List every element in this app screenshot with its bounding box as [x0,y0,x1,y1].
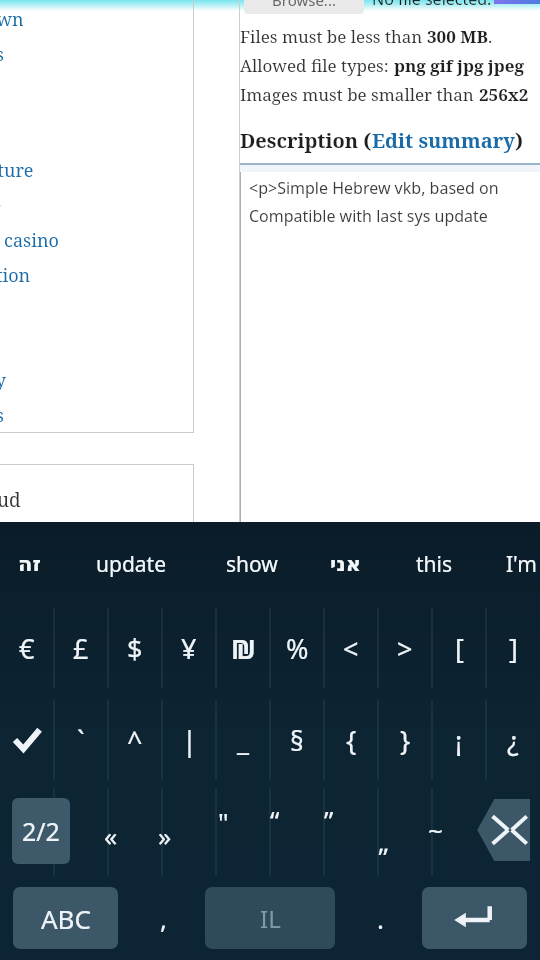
staticText: Allowed file types: [240,54,394,77]
staticText: ~ [428,812,443,847]
staticText: . [377,901,384,936]
staticText: ud [0,487,21,513]
button[interactable]: « [90,814,132,856]
button[interactable]: 2/2 [12,798,70,864]
button[interactable]: זה [18,544,41,584]
button[interactable]: ¿ [486,694,540,786]
button[interactable]: ` [54,694,108,786]
staticText: I'm [506,550,537,579]
button[interactable]: Space [205,887,335,949]
button[interactable]: I'm [506,544,537,584]
staticText: update [96,550,167,579]
staticText: > [397,630,413,667]
staticText: 300 MB [427,25,488,48]
staticText: 256x2 [479,83,529,106]
button[interactable]: " [202,800,244,842]
staticText: IL [260,902,281,935]
button[interactable]: ¡ [432,694,486,786]
button[interactable]: } [378,694,432,786]
staticText: , [160,901,167,936]
button[interactable]: es [0,42,4,67]
button[interactable]: € [0,602,54,694]
staticText: אני [330,552,361,576]
button[interactable]: es [0,403,4,428]
button[interactable]: . [357,887,403,949]
staticText: . [488,25,493,48]
staticText: « [104,818,118,853]
button[interactable]: ₪ [216,602,270,694]
button[interactable]: show [226,544,278,584]
staticText: זה [18,552,41,576]
staticText: € [19,630,35,667]
button[interactable]: ABC [13,887,118,949]
button[interactable]: gy [0,368,6,393]
button[interactable]: this [416,544,453,584]
button[interactable]: § [270,694,324,786]
button[interactable]: Edit summary [372,127,515,154]
staticText: < [343,630,359,667]
staticText: ) [515,127,524,154]
button[interactable]: אני [330,544,361,584]
button[interactable]: _ [216,694,270,786]
button[interactable]: “ [254,798,296,840]
staticText: _ [237,722,249,759]
button[interactable]: ^ [108,694,162,786]
staticText: % [286,630,309,667]
staticText: Description ( [240,127,372,154]
staticText: ` [77,722,85,759]
staticText: 2/2 [22,814,60,848]
button[interactable]: ” [308,798,350,840]
staticText: £ [73,630,89,667]
button[interactable]: <p>Simple Hebrew vkb, based on [240,163,540,535]
staticText: Files must be less than [240,25,427,48]
button[interactable]: own [0,7,24,32]
button[interactable]: ~ [414,808,456,850]
staticText: | [182,722,197,759]
button[interactable]: Enter [422,887,527,949]
staticText: ^ [127,722,143,759]
other: Confirm [12,725,42,755]
staticText: { [346,722,357,759]
button[interactable]: update [96,544,167,584]
staticText: ₪ [231,630,256,667]
staticText: " [218,804,229,839]
staticText: § [290,722,304,759]
staticText: ¿ [507,722,519,759]
button[interactable]: { [324,694,378,786]
staticText: } [400,722,411,759]
staticText: ” [324,802,334,837]
button[interactable]: $ [108,602,162,694]
button[interactable]: & casino [0,228,59,253]
staticText: » [158,818,172,853]
staticText: Browse... [272,0,336,10]
staticText: ¥ [181,630,197,667]
button[interactable]: ] [486,602,540,694]
staticText: ¡ [455,722,463,759]
button[interactable]: „ [362,820,404,862]
staticText: this [416,550,453,579]
button[interactable]: , [140,887,186,949]
staticText: png gif jpg jpeg [394,54,524,77]
button[interactable]: » [144,814,186,856]
button[interactable]: £ [54,602,108,694]
button[interactable]: % [270,602,324,694]
button[interactable]: | [162,694,216,786]
staticText: ] [509,630,518,667]
staticText: ABC [41,901,91,936]
staticText: No file selected. [372,0,492,10]
staticText: show [226,550,278,579]
button[interactable]: [ [432,602,486,694]
button[interactable]: le [0,193,2,218]
button[interactable]: nture [0,158,34,183]
staticText: $ [127,630,143,667]
staticText: Compatible with last sys update [249,205,488,227]
staticText: “ [270,802,280,837]
button[interactable]: > [378,602,432,694]
button[interactable]: Confirm [0,694,54,786]
button[interactable]: ation [0,263,31,288]
button[interactable]: Browse... [244,0,364,14]
staticText: Images must be smaller than [240,83,479,106]
button[interactable]: ¥ [162,602,216,694]
button[interactable]: < [324,602,378,694]
button[interactable]: Backspace [464,799,530,861]
